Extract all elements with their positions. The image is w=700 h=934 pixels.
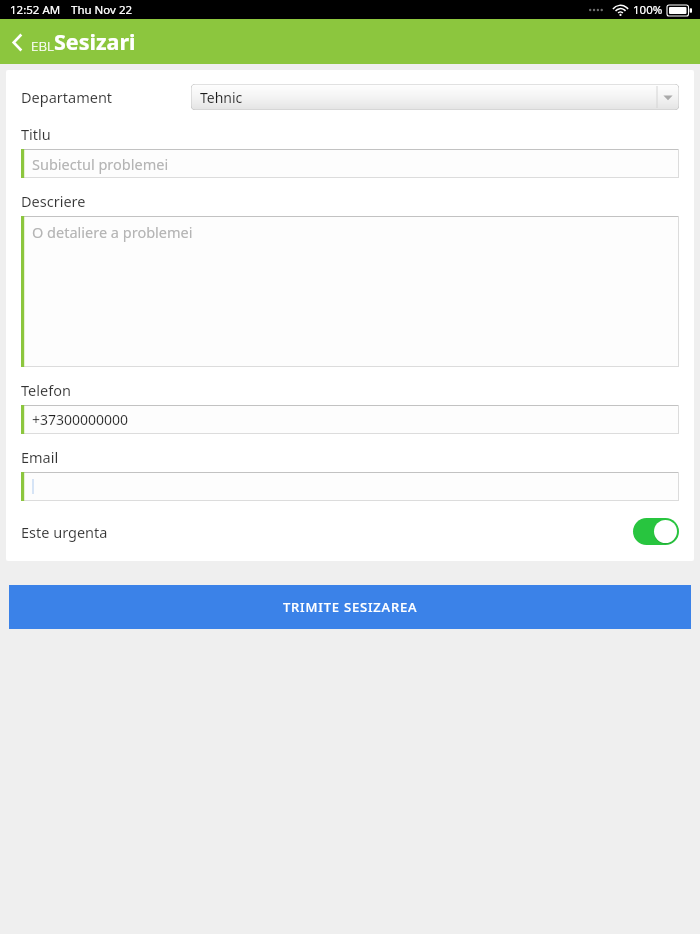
button[interactable]: [21, 472, 679, 501]
button[interactable]: +37300000000: [21, 405, 679, 434]
button[interactable]: Back: [3, 28, 31, 56]
button[interactable]: Este urgenta: [633, 518, 679, 545]
staticText: EBL: [31, 37, 54, 55]
staticText: Departament: [21, 87, 113, 107]
button[interactable]: Subiectul problemei: [21, 149, 679, 178]
staticText: Telefon: [21, 380, 71, 400]
staticText: Este urgenta: [21, 522, 108, 542]
button[interactable]: O detaliere a problemei: [21, 216, 679, 367]
staticText: Tehnic: [200, 88, 243, 107]
staticText: +37300000000: [32, 410, 129, 429]
button[interactable]: Tehnic: [191, 84, 679, 110]
staticText: TRIMITE SESIZAREA: [283, 598, 418, 616]
button[interactable]: TRIMITE SESIZAREA: [9, 585, 691, 629]
staticText: Titlu: [21, 124, 51, 144]
staticText: O detaliere a problemei: [32, 222, 193, 242]
staticText: Email: [21, 447, 59, 467]
staticText: Descriere: [21, 191, 86, 211]
staticText: Thu Nov 22: [71, 2, 133, 18]
staticText: 100%: [633, 2, 663, 18]
staticText: Sesizari: [54, 27, 136, 56]
staticText: Subiectul problemei: [32, 154, 169, 174]
staticText: 12:52 AM: [10, 2, 61, 18]
